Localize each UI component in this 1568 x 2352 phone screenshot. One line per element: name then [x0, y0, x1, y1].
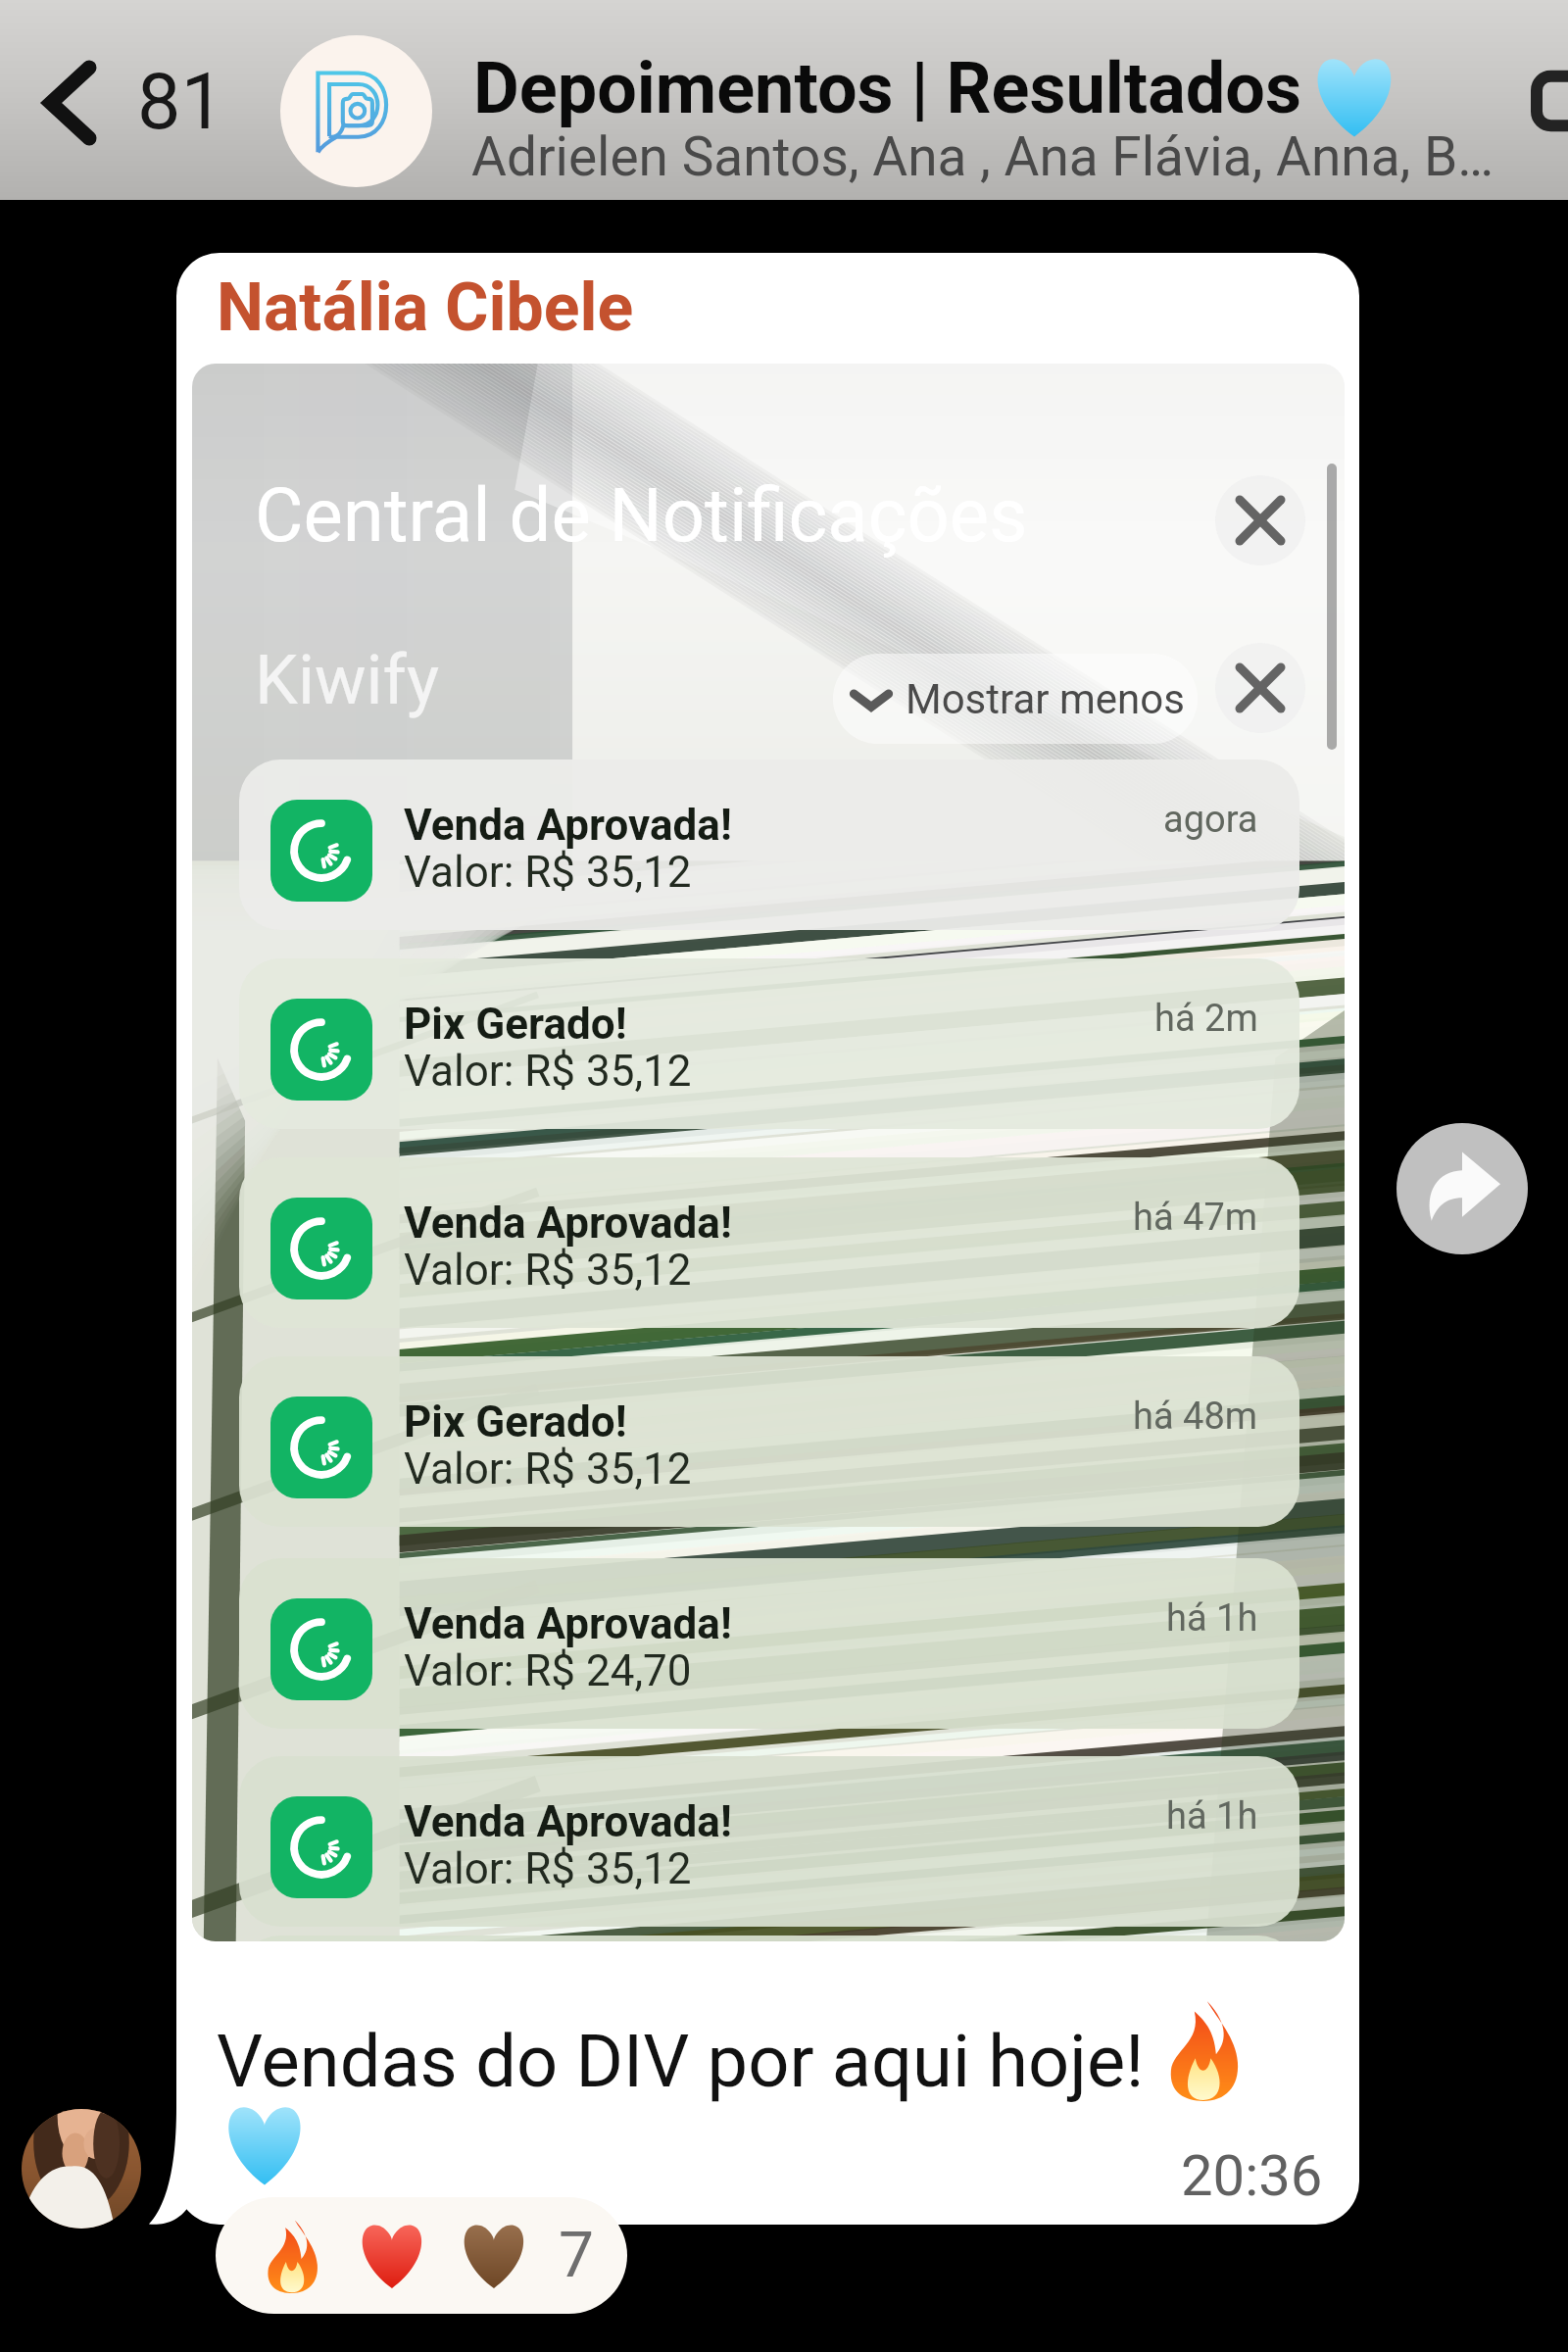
- staticText: Venda Aprovada!: [404, 1598, 732, 1649]
- button[interactable]: Venda Aprovada!: [239, 1756, 1299, 1927]
- staticText: Depoimentos | Resultados: [473, 47, 1301, 129]
- staticText: 20:36: [1181, 2142, 1323, 2209]
- button[interactable]: Venda Aprovada!: [239, 759, 1299, 930]
- staticText: Valor: R$ 24,70: [404, 1645, 692, 1696]
- staticText: Venda Aprovada!: [404, 1198, 732, 1249]
- staticText: Pix Gerado!: [404, 999, 627, 1050]
- button[interactable]: Video call: [1529, 57, 1568, 145]
- staticText: Central de Notificações: [255, 471, 1028, 559]
- button[interactable]: Valor: R$ 35,12: [239, 1935, 1299, 1941]
- button[interactable]: Natália Cibele: [176, 253, 1359, 2225]
- staticText: Valor: R$ 35,12: [404, 1245, 692, 1296]
- button[interactable]: Venda Aprovada!: [239, 1558, 1299, 1729]
- button[interactable]: Venda Aprovada!: [239, 1157, 1299, 1328]
- staticText: 7: [559, 2219, 594, 2292]
- staticText: agora: [1163, 798, 1258, 842]
- staticText: Natália Cibele: [217, 269, 634, 347]
- staticText: há 48m: [1133, 1395, 1258, 1439]
- staticText: 81: [137, 57, 224, 148]
- staticText: Valor: R$ 35,12: [404, 1444, 692, 1494]
- button[interactable]: Back, 81 unread: [27, 47, 242, 158]
- staticText: Valor: R$ 35,12: [404, 1843, 692, 1894]
- button[interactable]: Mostrar menos: [833, 654, 1198, 744]
- staticText: há 1h: [1166, 1794, 1258, 1838]
- button[interactable]: Pix Gerado!: [239, 958, 1299, 1129]
- staticText: Venda Aprovada!: [404, 1796, 732, 1847]
- button[interactable]: Group photo: [280, 35, 432, 187]
- staticText: Vendas do DIV por aqui hoje!: [217, 2019, 1162, 2104]
- button[interactable]: Sender avatar: [22, 2109, 141, 2229]
- staticText: Adrielen Santos, Ana , Ana Flávia, Anna,…: [471, 125, 1494, 188]
- staticText: Valor: R$ 35,12: [404, 1046, 692, 1097]
- button[interactable]: Dismiss: [1215, 643, 1305, 733]
- staticText: Pix Gerado!: [404, 1396, 627, 1447]
- button[interactable]: Pix Gerado!: [239, 1356, 1299, 1527]
- staticText: há 2m: [1154, 997, 1258, 1041]
- staticText: Mostrar menos: [906, 675, 1184, 723]
- staticText: Kiwify: [255, 640, 440, 720]
- staticText: Valor: R$ 35,12: [404, 847, 692, 898]
- staticText: há 1h: [1166, 1596, 1258, 1641]
- staticText: há 47m: [1133, 1196, 1258, 1240]
- button[interactable]: 7: [216, 2197, 627, 2314]
- staticText: Venda Aprovada!: [404, 800, 732, 851]
- button[interactable]: Dismiss: [1215, 475, 1305, 565]
- button[interactable]: Forward: [1396, 1123, 1528, 1254]
